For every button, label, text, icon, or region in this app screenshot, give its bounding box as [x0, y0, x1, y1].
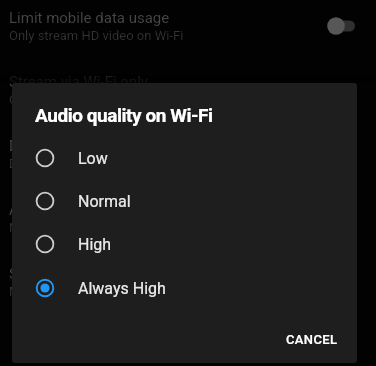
- staticText: Storage: [9, 265, 61, 283]
- button[interactable]: High: [12, 222, 357, 265]
- button[interactable]: Normal: [12, 179, 357, 222]
- staticText: Low: [78, 149, 108, 168]
- staticText: Audio quality on mobile: [9, 201, 166, 219]
- staticText: High: [78, 235, 112, 254]
- staticText: CANCEL: [286, 332, 338, 347]
- button[interactable]: Download using mobile data: [0, 128, 376, 180]
- staticText: Only stream HD video on Wi-Fi: [9, 28, 184, 43]
- staticText: Normal: [9, 220, 52, 235]
- staticText: Audio quality on Wi-Fi: [35, 104, 213, 126]
- staticText: Downloads use mobile data: [9, 156, 170, 171]
- button[interactable]: Storage: [0, 256, 376, 308]
- staticText: Limit mobile data usage: [9, 9, 170, 27]
- staticText: Stream via Wi-Fi only: [9, 73, 148, 91]
- staticText: Normal: [78, 192, 131, 211]
- staticText: Manage downloaded music: [9, 284, 169, 299]
- button[interactable]: CANCEL: [274, 321, 350, 358]
- button[interactable]: Stream via Wi-Fi only: [0, 64, 376, 116]
- button[interactable]: Low: [12, 136, 357, 179]
- button[interactable]: Always High: [12, 266, 357, 309]
- button[interactable]: Limit mobile data usage toggle: [327, 11, 367, 41]
- staticText: Download using mobile data: [9, 137, 199, 155]
- button[interactable]: Audio quality on mobile: [0, 192, 376, 244]
- button[interactable]: Limit mobile data usage: [0, 0, 376, 52]
- staticText: Only stream music on Wi-Fi: [9, 92, 167, 107]
- staticText: Always High: [78, 279, 166, 298]
